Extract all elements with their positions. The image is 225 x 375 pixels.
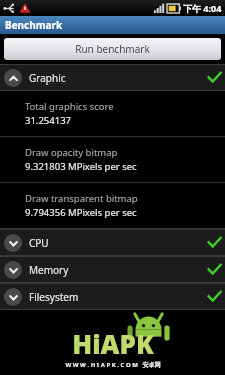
staticText: Draw transparent bitmap [25,192,138,205]
button[interactable]: Run benchmark [4,38,221,60]
staticText: Total graphics score [25,100,114,113]
staticText: 31.254137 [25,114,72,127]
staticText: 9.794356 MPixels per sec [25,206,137,219]
staticText: Memory [29,263,69,277]
staticText: HiAPK [72,326,154,361]
staticText: Graphic [29,71,66,85]
staticText: Draw opacity bitmap [25,146,118,159]
staticText: W W W . H I A P K . C O M 安卓网 [65,361,161,369]
button[interactable]: Collapse Graphic [0,65,225,90]
button[interactable]: Expand Filesystem [0,284,225,309]
button[interactable]: Expand CPU [0,230,225,255]
button[interactable]: Total graphics score [0,91,225,136]
staticText: 9.321803 MPixels per sec [25,160,137,173]
other: Collapse Graphic [4,69,22,87]
staticText: Benchmark [5,18,63,32]
other: Expand CPU [4,234,22,252]
button[interactable]: Expand Memory [0,257,225,282]
button[interactable]: Draw transparent bitmap [0,183,225,228]
button[interactable]: Draw opacity bitmap [0,137,225,182]
staticText: 下午 4:04 [183,2,222,14]
staticText: Run benchmark [75,42,150,56]
other: Expand Filesystem [4,288,22,306]
staticText: Filesystem [29,290,79,304]
staticText: CPU [29,236,49,250]
other: Expand Memory [4,261,22,279]
